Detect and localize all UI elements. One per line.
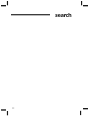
button[interactable]: Back — [0, 108, 11, 117]
staticText: search — [55, 11, 72, 19]
button[interactable]: Forward — [79, 108, 90, 117]
button[interactable]: Navigate up — [0, 0, 11, 9]
button[interactable]: More options — [79, 0, 90, 9]
button[interactable]: search — [11, 10, 72, 19]
